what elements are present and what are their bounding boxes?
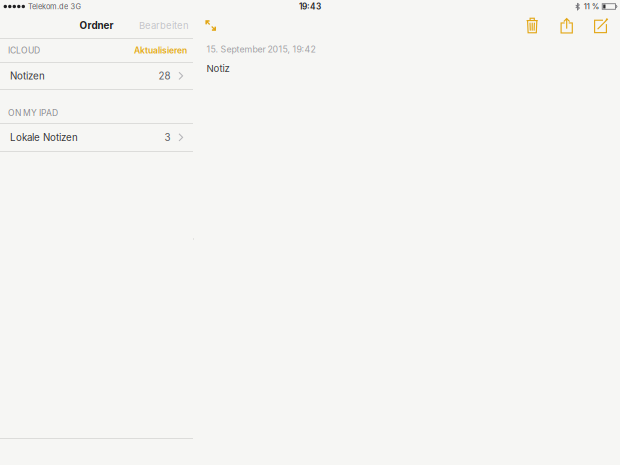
staticText: Bearbeiten	[139, 20, 189, 31]
staticText: ICLOUD	[8, 45, 40, 56]
staticText: 11 %	[584, 2, 600, 11]
staticText: 3	[164, 132, 170, 143]
staticText: Notiz	[206, 63, 229, 74]
staticText: 15. September 2015, 19:42	[206, 44, 315, 55]
staticText: Lokale Notizen	[10, 132, 78, 143]
staticText: 19:43	[299, 1, 321, 11]
button[interactable]: Aktualisieren	[134, 39, 187, 62]
button[interactable]: Lokale Notizen	[0, 124, 193, 151]
button[interactable]: Bearbeiten	[139, 13, 193, 38]
staticText: 28	[158, 70, 170, 82]
staticText: Notizen	[10, 70, 45, 82]
staticText: ON MY IPAD	[8, 108, 58, 118]
staticText: 3G	[70, 2, 81, 11]
button[interactable]: Teilen	[549, 13, 584, 38]
staticText: Telekom.de	[28, 2, 68, 11]
button[interactable]: Löschen	[515, 13, 549, 38]
button[interactable]: Notizen	[0, 63, 193, 89]
button[interactable]: Vollbild	[194, 13, 223, 38]
staticText: Aktualisieren	[134, 45, 187, 56]
staticText: Ordner	[79, 19, 113, 31]
button[interactable]: Neue Notiz	[584, 13, 620, 38]
